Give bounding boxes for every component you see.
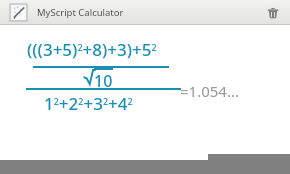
staticText: =1.054... [180, 81, 239, 101]
staticText: 12+22+32+42 [44, 92, 133, 115]
button[interactable]: Delete [261, 1, 285, 25]
staticText: (((3+5)2+8)+3)+52 [27, 38, 157, 61]
button[interactable]: App icon [9, 3, 28, 22]
staticText: 10 [94, 70, 113, 92]
staticText: MyScript Calculator [37, 6, 124, 19]
